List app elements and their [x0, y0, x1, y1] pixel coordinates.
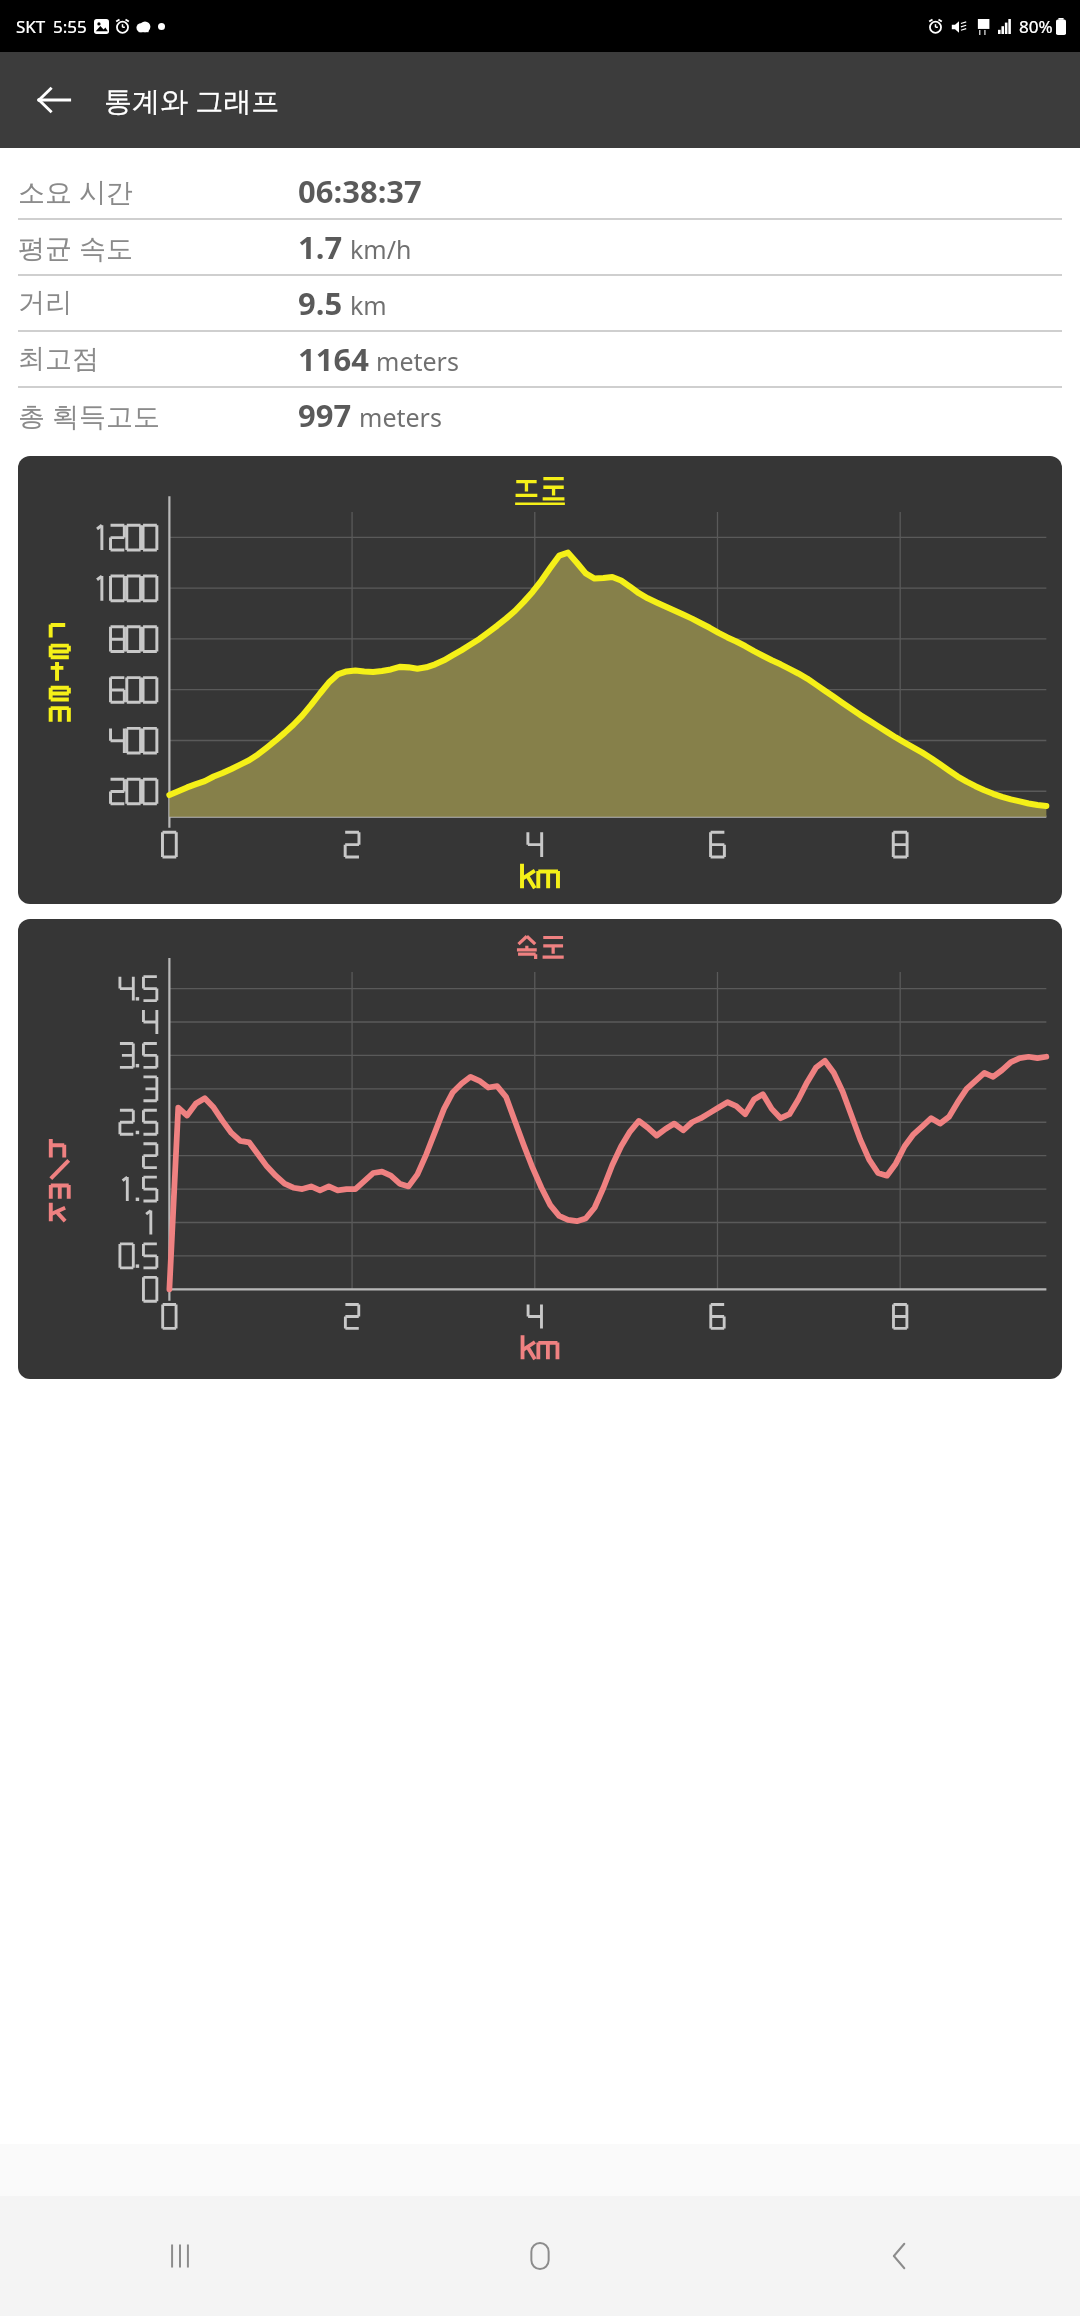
staticText: 06:38:37 [298, 170, 422, 212]
staticText: 1164 [298, 338, 369, 380]
button[interactable]: Recents [0, 2196, 360, 2316]
staticText: meters [359, 400, 442, 434]
button[interactable]: 최고점 [18, 332, 1062, 386]
staticText: 997 [298, 394, 352, 436]
staticText: km/h [350, 232, 412, 266]
staticText: SKT [16, 15, 46, 38]
staticText: 총 획득고도 [18, 397, 298, 434]
staticText: 5:55 [53, 15, 87, 38]
staticText: 최고점 [18, 342, 298, 376]
button[interactable]: 총 획득고도 [18, 388, 1062, 442]
staticText: 1.7 [298, 226, 343, 268]
staticText: meters [376, 344, 459, 378]
staticText: 소요 시간 [18, 173, 298, 210]
staticText: 거리 [18, 286, 298, 320]
staticText: km [350, 288, 387, 322]
staticText: 80% [1019, 15, 1053, 38]
staticText: 평균 속도 [18, 229, 298, 266]
staticText: 9.5 [298, 282, 343, 324]
button[interactable] [18, 919, 1062, 1379]
button[interactable]: 거리 [18, 276, 1062, 330]
button[interactable]: 소요 시간 [18, 164, 1062, 218]
button[interactable]: 평균 속도 [18, 220, 1062, 274]
staticText: 통계와 그래프 [104, 81, 280, 119]
button[interactable]: Home [360, 2196, 720, 2316]
button[interactable]: Back [26, 72, 82, 128]
button[interactable]: Back [720, 2196, 1080, 2316]
button[interactable] [18, 456, 1062, 904]
